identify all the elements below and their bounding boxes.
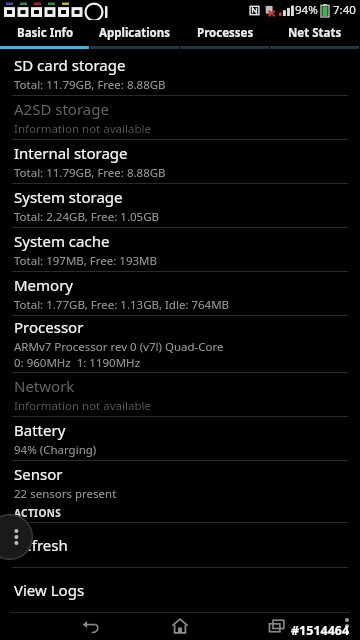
staticText: Total: 11.79GB, Free: 8.88GB [14, 77, 166, 93]
staticText: Total: 1.77GB, Free: 1.13GB, Idle: 764MB [14, 297, 230, 313]
button[interactable]: Processes [180, 20, 270, 46]
button[interactable]: System storage [0, 184, 360, 227]
staticText: Refresh [14, 535, 68, 555]
button[interactable]: View Logs [0, 568, 360, 612]
button[interactable]: A2SD storage [0, 96, 360, 139]
button[interactable]: Sensor [0, 461, 360, 504]
staticText: View Logs [14, 580, 85, 600]
staticText: SD card storage [14, 55, 126, 75]
button[interactable]: Applications [90, 20, 180, 46]
staticText: #1514464 [291, 622, 350, 639]
staticText: Information not available [14, 398, 151, 414]
staticText: Basic Info [17, 25, 74, 41]
button[interactable]: More options [336, 615, 358, 637]
button[interactable]: Net Stats [270, 20, 360, 46]
staticText: A2SD storage [14, 99, 109, 119]
staticText: 94% (Charging) [14, 442, 97, 458]
button[interactable]: System cache [0, 228, 360, 271]
staticText: System cache [14, 231, 110, 251]
staticText: ACTIONS [14, 506, 62, 520]
staticText: Applications [99, 25, 171, 41]
staticText: Sensor [14, 464, 63, 484]
staticText: Processor [14, 317, 84, 337]
button[interactable]: Battery [0, 417, 360, 460]
staticText: 22 sensors present [14, 486, 117, 502]
staticText: Processes [197, 25, 254, 41]
button[interactable]: SD card storage [0, 52, 360, 95]
staticText: 94% [295, 2, 318, 18]
button[interactable]: Refresh [0, 523, 360, 567]
staticText: Net Stats [288, 25, 342, 41]
staticText: 0: 960MHz 1: 1190MHz [14, 355, 141, 371]
staticText: ARMv7 Processor rev 0 (v7l) Quad-Core [14, 339, 224, 355]
staticText: Total: 2.24GB, Free: 1.05GB [14, 209, 160, 225]
staticText: Internal storage [14, 143, 128, 163]
button[interactable]: Processor [0, 316, 360, 372]
button[interactable]: Internal storage [0, 140, 360, 183]
staticText: Memory [14, 275, 74, 295]
staticText: Total: 11.79GB, Free: 8.88GB [14, 165, 166, 181]
staticText: Total: 197MB, Free: 193MB [14, 253, 157, 269]
button[interactable]: Back [68, 612, 112, 640]
staticText: Network [14, 376, 75, 396]
staticText: Battery [14, 420, 66, 440]
staticText: Information not available [14, 121, 151, 137]
button[interactable]: Network [0, 373, 360, 416]
button[interactable]: Basic Info [0, 20, 90, 46]
staticText: System storage [14, 187, 123, 207]
button[interactable]: Recent apps [255, 612, 299, 640]
staticText: 7:40 [333, 2, 356, 18]
button[interactable]: Memory [0, 272, 360, 315]
button[interactable]: Home [158, 612, 202, 640]
button[interactable]: Floating menu [0, 514, 33, 560]
